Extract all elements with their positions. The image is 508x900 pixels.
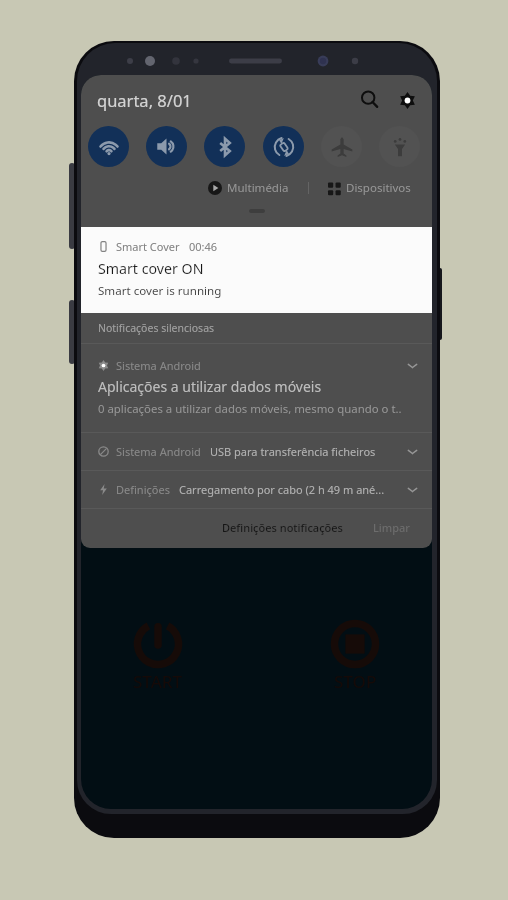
staticText: Carregamento por cabo (2 h 49 m ané... bbox=[179, 482, 401, 497]
staticText: Dispositivos bbox=[346, 180, 411, 196]
staticText: Notificações silenciosas bbox=[98, 321, 215, 335]
button[interactable]: Auto rotate bbox=[263, 126, 304, 167]
staticText: Multimédia bbox=[227, 180, 289, 196]
staticText: Smart Cover bbox=[116, 239, 180, 254]
button[interactable]: Limpar bbox=[366, 515, 418, 540]
staticText: Definições notificações bbox=[222, 520, 343, 535]
staticText: Sistema Android bbox=[116, 358, 201, 373]
button[interactable]: Sistema Android bbox=[81, 433, 432, 470]
button[interactable]: Settings bbox=[392, 85, 422, 115]
staticText: USB para transferência ficheiros bbox=[210, 444, 401, 459]
button[interactable]: Smart Cover bbox=[81, 227, 432, 313]
staticText: STOP bbox=[334, 670, 377, 693]
button[interactable]: Bluetooth bbox=[204, 126, 245, 167]
button[interactable]: Sound bbox=[146, 126, 187, 167]
button[interactable]: Search bbox=[355, 85, 385, 115]
button[interactable]: Flashlight bbox=[379, 126, 420, 167]
staticText: Smart cover ON bbox=[98, 259, 204, 278]
staticText: Limpar bbox=[373, 520, 411, 535]
button[interactable]: quarta, 8/01 bbox=[97, 89, 198, 115]
button[interactable]: Wi-Fi bbox=[88, 126, 129, 167]
button[interactable]: Dispositivos bbox=[309, 178, 421, 198]
staticText: quarta, 8/01 bbox=[97, 89, 192, 111]
staticText: Aplicações a utilizar dados móveis bbox=[98, 377, 322, 396]
button[interactable]: Multimédia bbox=[198, 178, 308, 198]
staticText: 0 aplicações a utilizar dados móveis, me… bbox=[98, 401, 402, 417]
other: Start bbox=[134, 620, 182, 668]
staticText: Sistema Android bbox=[116, 444, 201, 459]
staticText: 00:46 bbox=[189, 239, 218, 254]
button[interactable]: Airplane mode bbox=[321, 126, 362, 167]
button[interactable]: Definições bbox=[81, 471, 432, 508]
staticText: Smart cover is running bbox=[98, 283, 222, 299]
button[interactable]: Start bbox=[113, 620, 203, 693]
button[interactable]: Definições notificações bbox=[215, 515, 350, 540]
other: Stop bbox=[331, 620, 379, 668]
staticText: Definições bbox=[116, 482, 170, 497]
button[interactable]: Sistema Android bbox=[81, 344, 432, 432]
staticText: START bbox=[133, 670, 183, 693]
button[interactable]: Stop bbox=[310, 620, 400, 693]
